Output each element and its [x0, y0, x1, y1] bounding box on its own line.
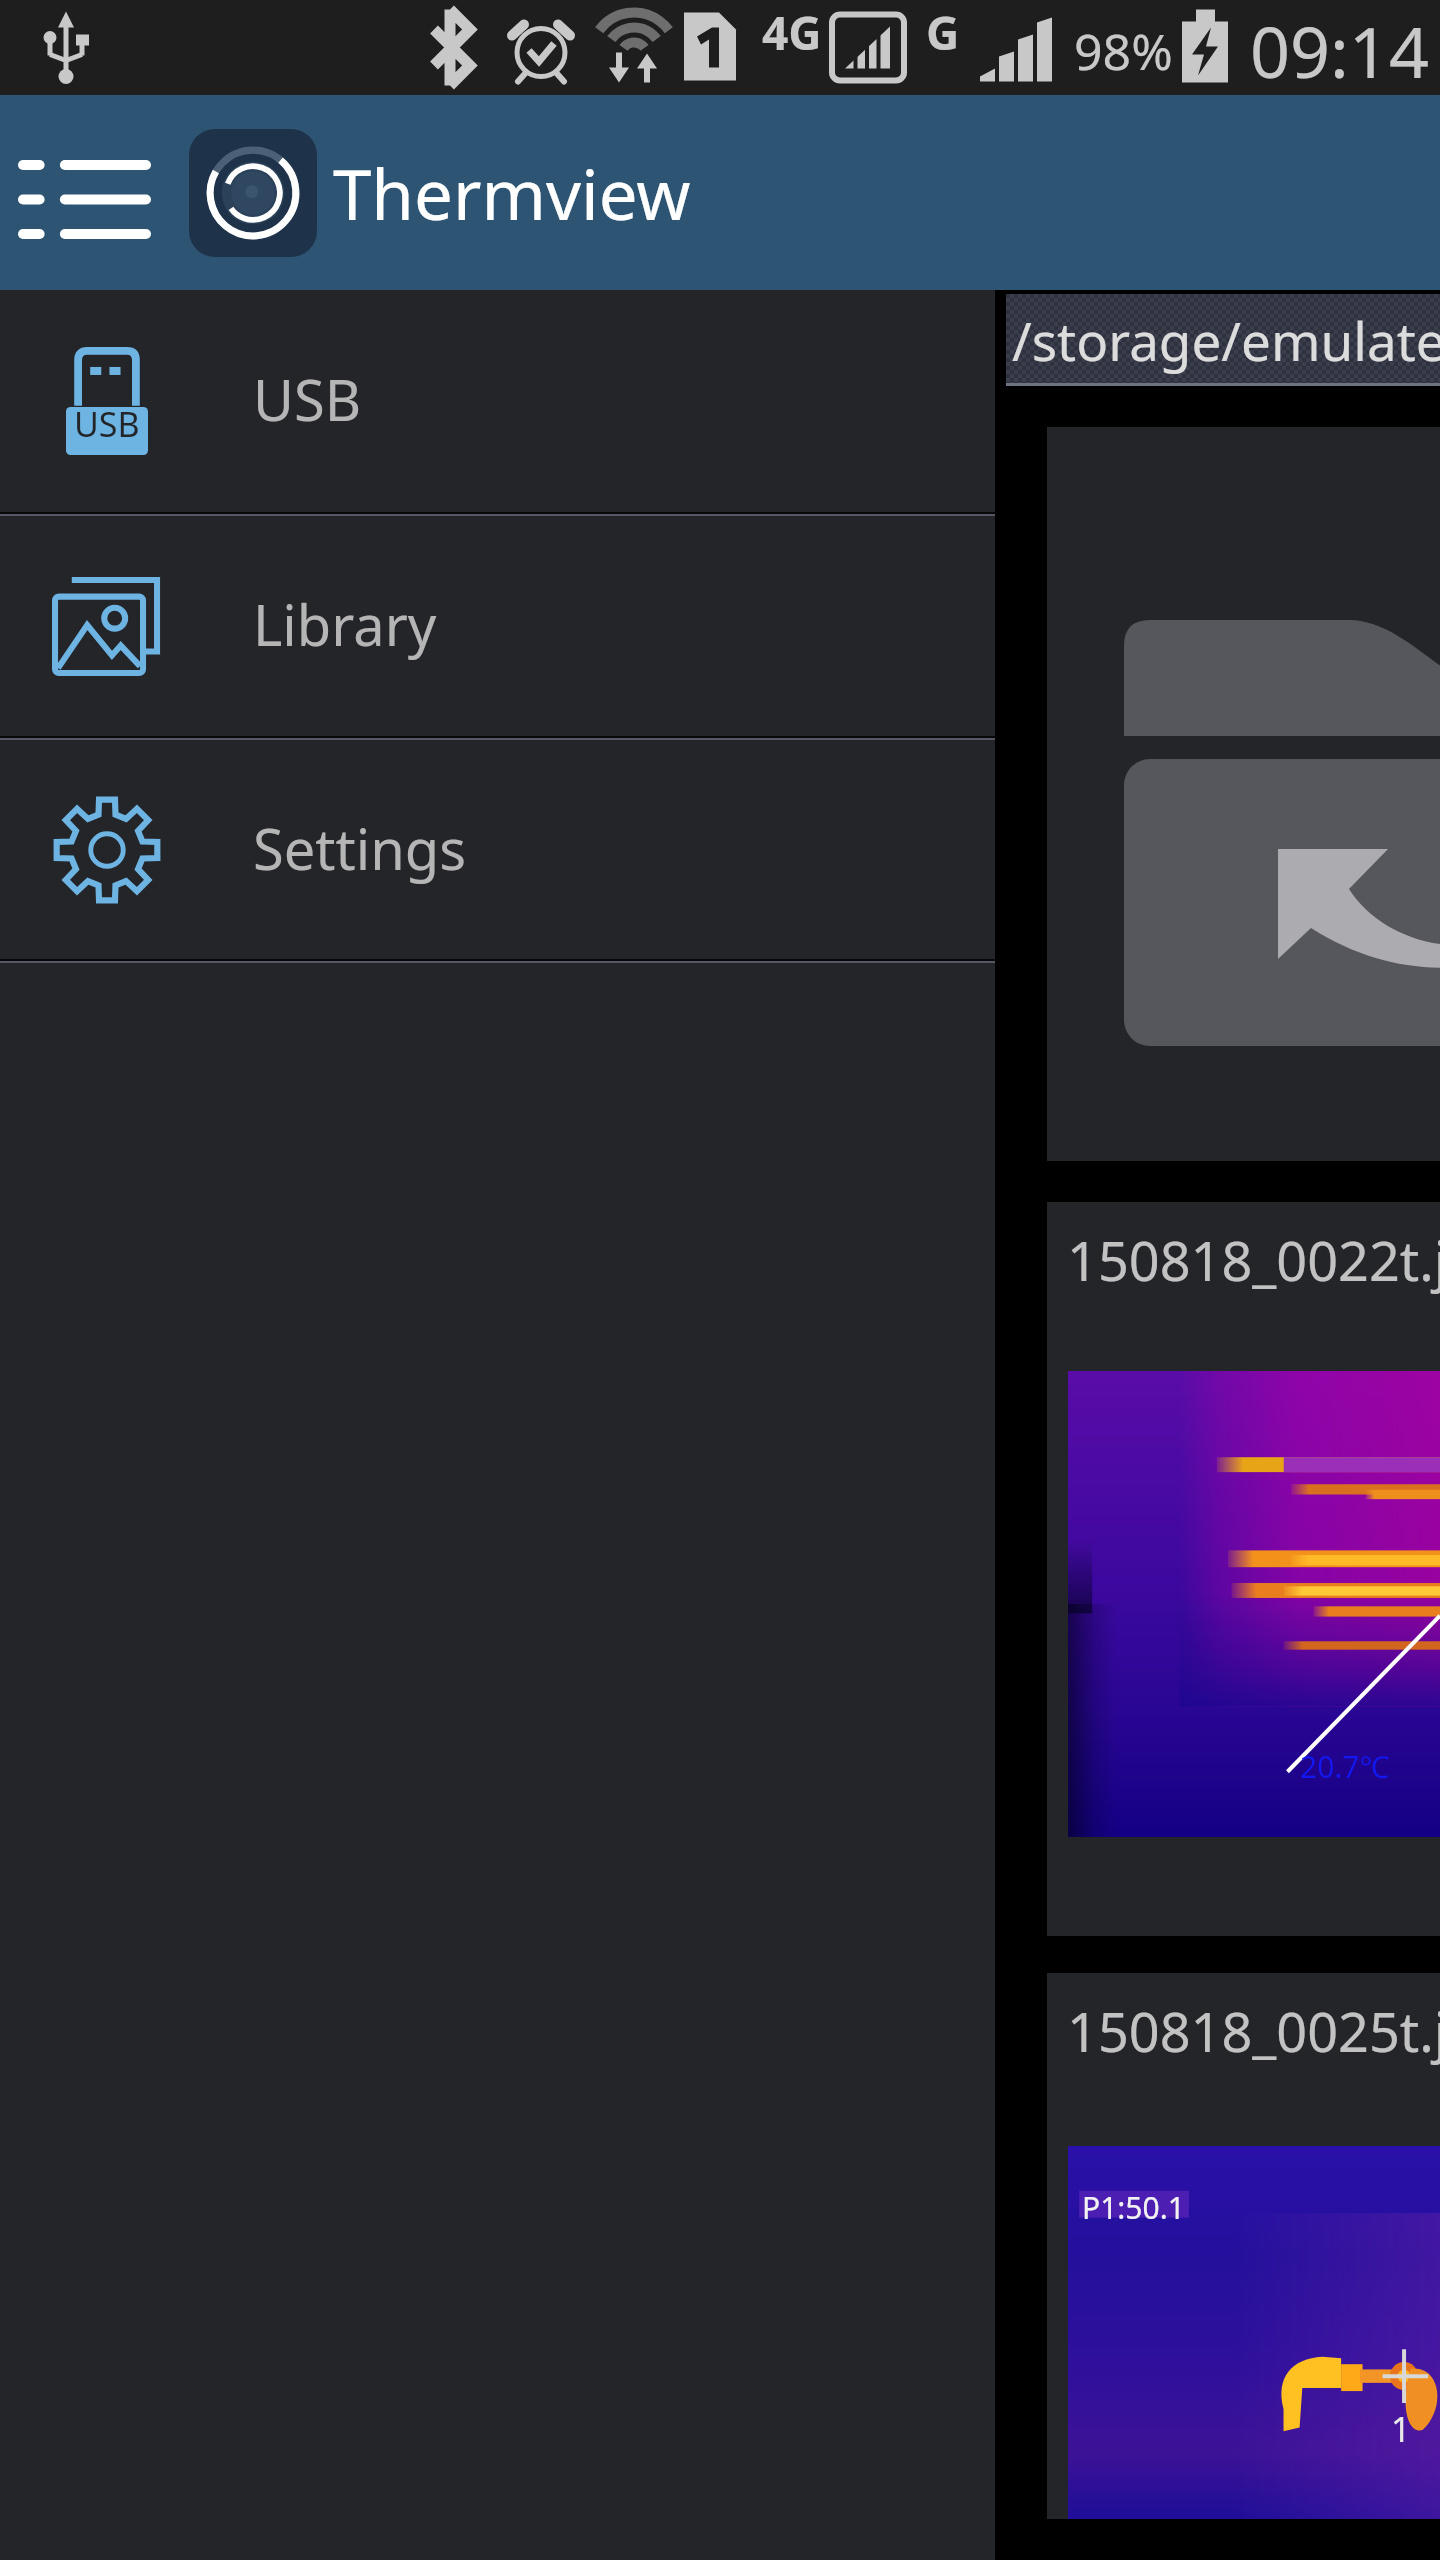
staticText: /storage/emulated/0/DCIM	[1012, 304, 1440, 376]
staticText: 09:14	[1250, 3, 1429, 98]
staticText: Thermview	[333, 146, 691, 240]
button[interactable]: Library	[0, 516, 995, 736]
staticText: USB	[253, 361, 362, 437]
button[interactable]: /storage/emulated/0/DCIM	[1006, 294, 1440, 386]
button[interactable]: USB	[0, 290, 995, 512]
staticText: G	[926, 1, 960, 64]
staticText: 1	[1391, 2406, 1411, 2452]
button[interactable]: Parent folder	[1047, 427, 1440, 1161]
button[interactable]: 150818_0022t.jpg	[1047, 1202, 1440, 1936]
staticText: 98%	[1074, 17, 1173, 85]
staticText: P1:50.1	[1082, 2187, 1185, 2228]
staticText: Library	[253, 586, 437, 662]
staticText: USB	[74, 401, 140, 447]
staticText: Settings	[253, 810, 467, 886]
button[interactable]: 150818_0025t.jpg	[1047, 1973, 1440, 2519]
staticText: 4G	[762, 1, 822, 64]
staticText: 20.7℃	[1300, 1746, 1390, 1787]
staticText: 150818_0022t.jpg	[1067, 1223, 1440, 1297]
staticText: 150818_0025t.jpg	[1067, 1994, 1440, 2068]
button[interactable]: Open navigation drawer	[0, 95, 168, 290]
button[interactable]: Settings	[0, 740, 995, 959]
